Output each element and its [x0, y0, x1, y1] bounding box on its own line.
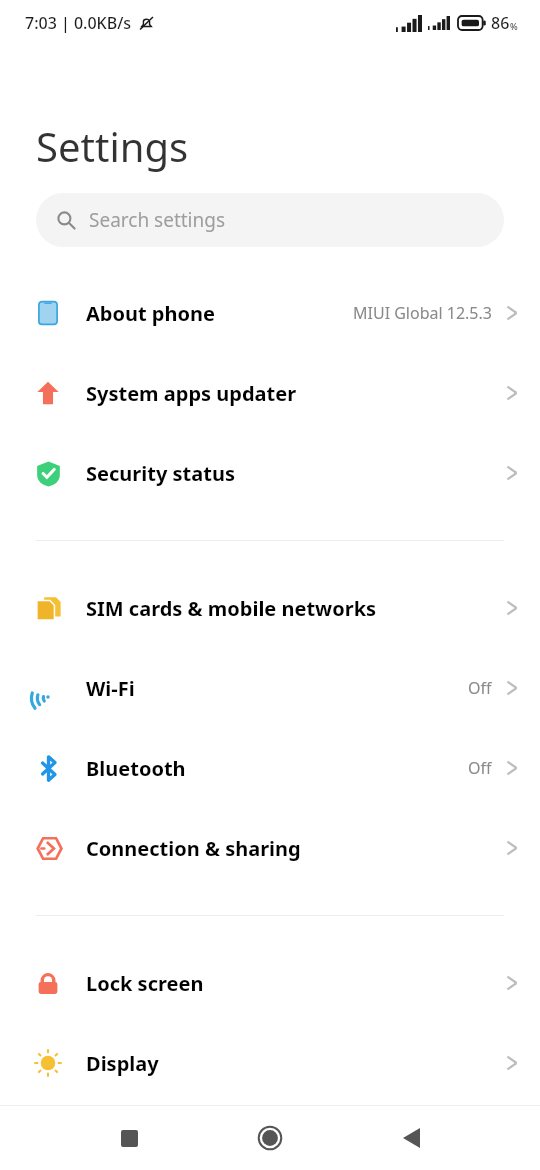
button[interactable]: Bluetooth: [0, 728, 540, 808]
staticText: Connection & sharing: [86, 835, 506, 862]
staticText: Off: [468, 677, 492, 699]
button[interactable]: Lock screen: [0, 943, 540, 1023]
staticText: %: [510, 20, 518, 32]
button[interactable]: Search settings: [36, 193, 504, 247]
button[interactable]: Recents: [106, 1115, 152, 1161]
button[interactable]: SIM cards & mobile networks: [0, 568, 540, 648]
staticText: Off: [468, 757, 492, 779]
button[interactable]: Home: [247, 1115, 293, 1161]
staticText: About phone: [86, 300, 353, 327]
button[interactable]: System apps updater: [0, 353, 540, 433]
staticText: 7:03 | 0.0KB/s: [25, 12, 132, 34]
staticText: Bluetooth: [86, 755, 468, 782]
staticText: MIUI Global 12.5.3: [353, 302, 492, 324]
button[interactable]: About phone: [0, 273, 540, 353]
staticText: Display: [86, 1050, 506, 1077]
button[interactable]: Back: [388, 1115, 434, 1161]
button[interactable]: Display: [0, 1023, 540, 1103]
button[interactable]: Security status: [0, 433, 540, 513]
staticText: Lock screen: [86, 970, 506, 997]
staticText: Wi-Fi: [86, 675, 468, 702]
staticText: Settings: [36, 119, 189, 173]
staticText: System apps updater: [86, 380, 506, 407]
button[interactable]: Connection & sharing: [0, 808, 540, 888]
staticText: 86: [491, 12, 510, 34]
staticText: Search settings: [89, 207, 226, 233]
button[interactable]: Wi-Fi: [0, 648, 540, 728]
staticText: Security status: [86, 460, 506, 487]
staticText: SIM cards & mobile networks: [86, 595, 506, 622]
